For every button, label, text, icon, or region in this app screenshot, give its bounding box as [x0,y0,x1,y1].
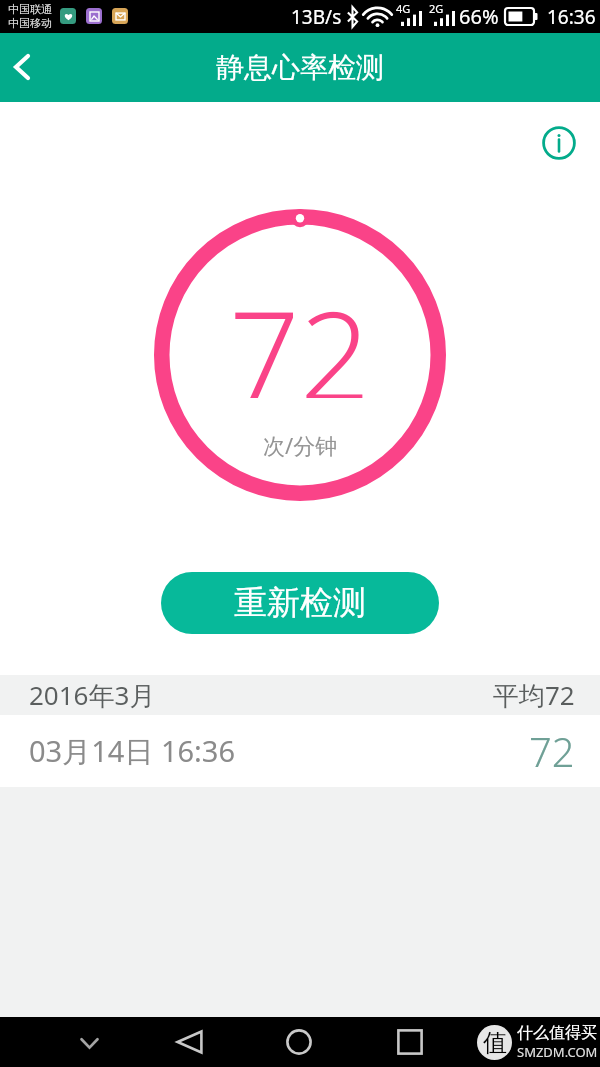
button[interactable]: 重新检测 [161,572,439,634]
button[interactable]: Hide keyboard [48,1017,132,1067]
staticText: 次/分钟 [263,430,338,460]
staticText: 什么值得买 [517,1023,597,1043]
staticText: 4G [396,1,411,16]
staticText: 13B/s [291,4,342,30]
staticText: 平均72 [493,677,575,713]
staticText: SMZDM.COM [517,1043,598,1061]
staticText: 中国联通 [8,2,52,16]
staticText: 静息心率检测 [216,50,384,85]
staticText: 16:36 [547,4,596,30]
button[interactable]: Back [0,33,56,102]
button[interactable]: Info [535,119,583,167]
staticText: 重新检测 [234,582,366,624]
staticText: 值 [483,1028,507,1058]
staticText: 72 [529,724,575,778]
button[interactable]: Home [258,1017,342,1067]
staticText: 2G [429,1,444,16]
staticText: 2016年3月 [29,677,156,713]
staticText: 72 [229,268,371,398]
staticText: 66% [459,3,499,30]
staticText: 03月14日 16:36 [29,731,236,771]
button[interactable]: 03月14日 16:36 [0,715,600,787]
staticText: 中国移动 [8,16,52,30]
button[interactable]: Recents [368,1017,452,1067]
button[interactable]: Back [148,1017,232,1067]
